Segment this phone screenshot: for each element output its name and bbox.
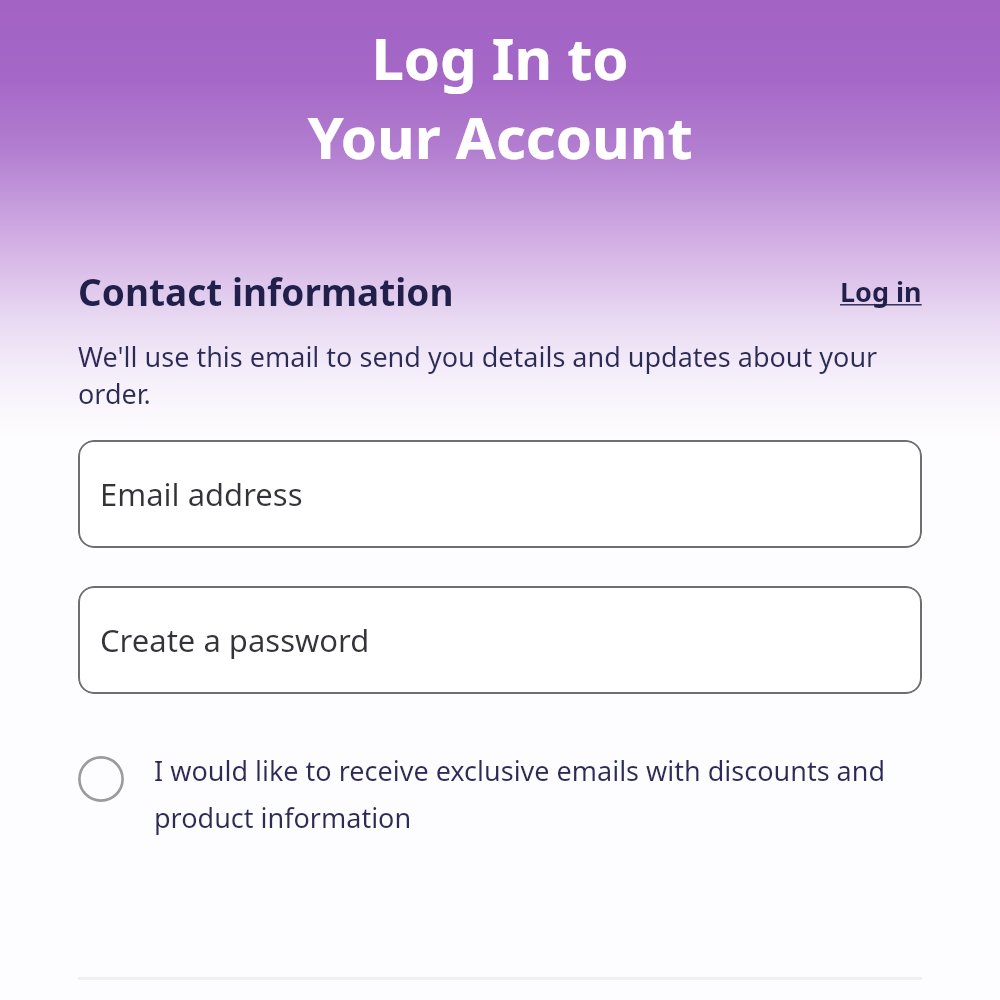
button[interactable]: Receive exclusive emails checkbox [78,756,922,840]
staticText: Contact information [78,266,454,316]
other: Receive exclusive emails checkbox [78,756,124,802]
staticText: Create a password [100,619,370,661]
button[interactable]: Create a password [78,586,922,694]
button[interactable]: Log in [840,273,922,310]
button[interactable]: Email address [78,440,922,548]
staticText: Log In to [371,18,629,97]
staticText: I would like to receive exclusive emails… [154,752,922,836]
staticText: We'll use this email to send you details… [78,338,922,412]
staticText: $13,443.00 [709,92,884,138]
staticText: Log in [840,273,922,310]
staticText: Order summary [78,92,346,138]
staticText: Your Account [307,97,693,176]
staticText: Email address [100,473,303,515]
button[interactable]: Order summary [78,92,922,138]
